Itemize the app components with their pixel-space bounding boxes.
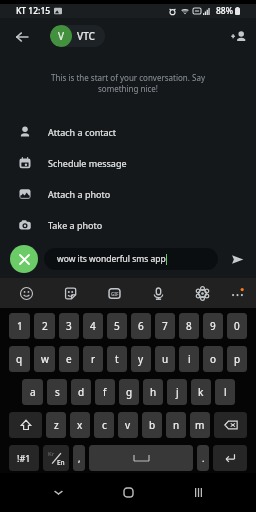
staticText: Attach a contact <box>48 126 117 138</box>
staticText: 5 <box>114 319 120 333</box>
button[interactable]: !#1 <box>9 445 39 471</box>
button[interactable]: x <box>70 412 90 438</box>
button[interactable]: 4 <box>83 313 103 339</box>
button[interactable]: 7 <box>155 313 175 339</box>
button[interactable]: y <box>131 346 151 372</box>
button[interactable]: Take a photo <box>0 209 256 240</box>
button[interactable]: Stickers <box>48 278 92 308</box>
staticText: b <box>149 418 156 432</box>
button[interactable]: i <box>179 346 199 372</box>
staticText: g <box>126 385 133 399</box>
button[interactable]: k <box>191 379 211 405</box>
staticText: Take a photo <box>48 219 103 231</box>
staticText: x <box>77 418 83 432</box>
staticText: s <box>55 385 60 399</box>
button[interactable]: o <box>203 346 223 372</box>
staticText: d <box>78 385 85 399</box>
button[interactable]: Send <box>224 246 250 272</box>
button[interactable]: 3 <box>59 313 79 339</box>
button[interactable]: b <box>142 412 162 438</box>
button[interactable]: e <box>59 346 79 372</box>
button[interactable]: More options <box>224 278 250 308</box>
button[interactable]: t <box>107 346 127 372</box>
button[interactable]: Backspace <box>214 412 247 438</box>
staticText: r <box>91 352 96 366</box>
staticText: 0 <box>234 319 240 333</box>
button[interactable]: m <box>190 412 210 438</box>
button[interactable]: Change language <box>43 445 69 471</box>
staticText: This is the start of your conversation. … <box>28 72 228 94</box>
staticText: Schedule message <box>48 157 127 169</box>
button[interactable]: Enter <box>213 445 247 471</box>
button[interactable]: h <box>143 379 163 405</box>
button[interactable]: Close attachments <box>10 245 38 273</box>
staticText: Attach a photo <box>48 188 111 200</box>
button[interactable]: 6 <box>131 313 151 339</box>
button[interactable]: g <box>119 379 139 405</box>
button[interactable]: Back <box>8 23 35 50</box>
staticText: 4 <box>90 319 96 333</box>
button[interactable]: Back <box>23 473 93 512</box>
button[interactable]: Emoji <box>4 278 48 308</box>
staticText: e <box>66 352 72 366</box>
button[interactable]: Voice input <box>136 278 180 308</box>
staticText: k <box>198 385 204 399</box>
staticText: , <box>78 452 81 464</box>
button[interactable]: 8 <box>179 313 199 339</box>
staticText: 7 <box>162 319 168 333</box>
button[interactable]: 0 <box>227 313 247 339</box>
button[interactable]: w <box>34 346 55 372</box>
staticText: i <box>188 352 191 366</box>
staticText: c <box>102 418 107 432</box>
button[interactable]: q <box>9 346 30 372</box>
staticText: w <box>41 352 49 366</box>
staticText: !#1 <box>17 452 31 464</box>
staticText: l <box>224 385 227 399</box>
button[interactable]: z <box>46 412 66 438</box>
button[interactable]: Recents <box>163 473 233 512</box>
staticText: 1 <box>17 319 23 333</box>
button[interactable]: j <box>167 379 187 405</box>
button[interactable]: 1 <box>9 313 30 339</box>
staticText: 8 <box>186 319 192 333</box>
button[interactable]: Space <box>89 445 193 471</box>
staticText: z <box>54 418 59 432</box>
button[interactable]: , <box>73 445 85 471</box>
button[interactable]: f <box>95 379 115 405</box>
button[interactable]: Home <box>93 473 163 512</box>
button[interactable]: Attach a contact <box>0 116 256 147</box>
button[interactable]: d <box>71 379 91 405</box>
staticText: u <box>162 352 169 366</box>
staticText: VTC <box>77 29 95 43</box>
button[interactable]: a <box>22 379 43 405</box>
staticText: Kr <box>48 450 55 458</box>
staticText: a <box>30 385 36 399</box>
button[interactable]: Attach a photo <box>0 178 256 209</box>
staticText: v <box>125 418 131 432</box>
button[interactable]: . <box>197 445 209 471</box>
button[interactable]: 9 <box>203 313 223 339</box>
button[interactable]: Shift <box>9 412 42 438</box>
button[interactable]: v <box>118 412 138 438</box>
button[interactable]: Schedule message <box>0 147 256 178</box>
button[interactable]: p <box>227 346 247 372</box>
button[interactable]: V <box>50 25 105 47</box>
button[interactable]: l <box>215 379 235 405</box>
staticText: o <box>210 352 217 366</box>
staticText: m <box>195 418 205 432</box>
button[interactable]: s <box>47 379 67 405</box>
staticText: 2 <box>42 319 48 333</box>
button[interactable]: Add person <box>225 23 252 50</box>
button[interactable]: r <box>83 346 103 372</box>
button[interactable]: wow its wonderful sms app <box>44 248 218 270</box>
staticText: j <box>176 385 179 399</box>
button[interactable]: 5 <box>107 313 127 339</box>
button[interactable]: c <box>94 412 114 438</box>
button[interactable]: 2 <box>34 313 55 339</box>
staticText: t <box>115 352 119 366</box>
button[interactable]: u <box>155 346 175 372</box>
button[interactable]: GIF <box>92 278 136 308</box>
button[interactable]: n <box>166 412 186 438</box>
button[interactable]: Keyboard settings <box>180 278 224 308</box>
staticText: KT 12:15 <box>16 5 51 17</box>
